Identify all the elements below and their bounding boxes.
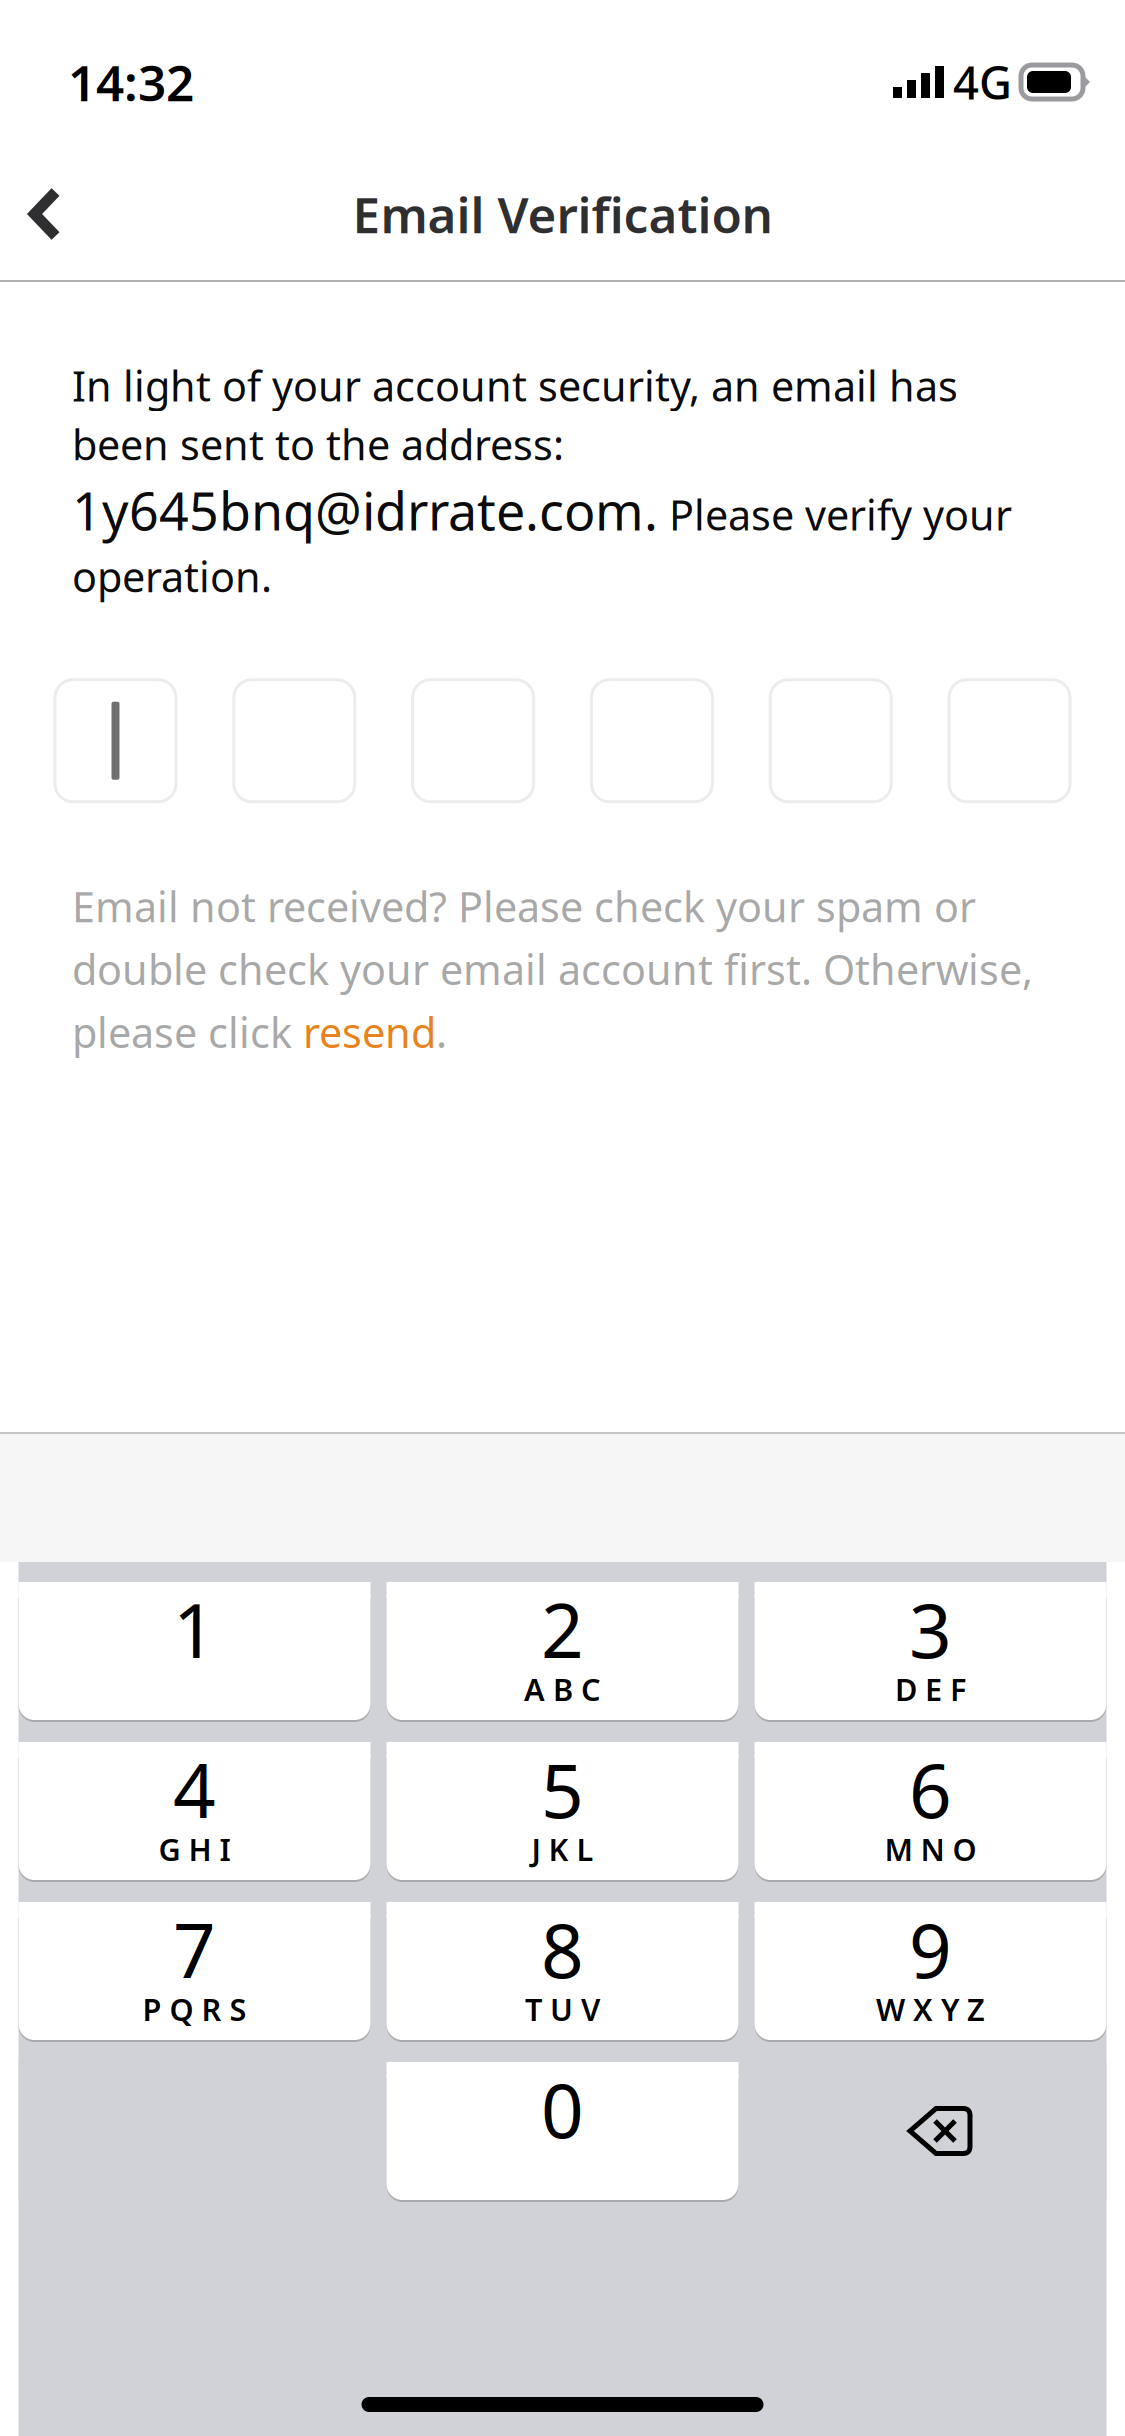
button[interactable]: Verification code digit 4 bbox=[591, 680, 712, 802]
button[interactable]: Delete bbox=[754, 2062, 1106, 2200]
button[interactable]: Verification code digit 1 bbox=[55, 680, 176, 802]
staticText: 5 bbox=[541, 1739, 584, 1839]
staticText: 3 bbox=[909, 1579, 952, 1679]
staticText: 0 bbox=[541, 2059, 584, 2159]
button[interactable]: 3 bbox=[754, 1582, 1106, 1720]
staticText: 14:32 bbox=[68, 49, 194, 115]
staticText: 9 bbox=[909, 1899, 952, 1999]
staticText: T U V bbox=[525, 1989, 600, 2029]
button[interactable]: 9 bbox=[754, 1902, 1106, 2040]
staticText: Email Verification bbox=[352, 181, 772, 247]
button[interactable]: Back bbox=[0, 164, 90, 264]
button[interactable]: 6 bbox=[754, 1742, 1106, 1880]
button[interactable]: Verification code digit 2 bbox=[234, 680, 355, 802]
button[interactable]: Verification code digit 5 bbox=[770, 680, 891, 802]
button[interactable]: Verification code digit 6 bbox=[949, 680, 1070, 802]
button[interactable]: 1 bbox=[18, 1582, 370, 1720]
staticText: J K L bbox=[531, 1829, 593, 1869]
button[interactable]: Verification code digit 3 bbox=[413, 680, 534, 802]
button[interactable]: 7 bbox=[18, 1902, 370, 2040]
staticText: In light of your account security, an em… bbox=[72, 358, 1012, 604]
button[interactable]: 5 bbox=[386, 1742, 738, 1880]
button[interactable]: 4 bbox=[18, 1742, 370, 1880]
staticText: M N O bbox=[884, 1829, 976, 1869]
staticText: 4 bbox=[173, 1739, 216, 1839]
button[interactable]: 2 bbox=[386, 1582, 738, 1720]
staticText: 2 bbox=[541, 1579, 584, 1679]
staticText: 7 bbox=[173, 1899, 216, 1999]
staticText: P Q R S bbox=[142, 1989, 246, 2029]
staticText: G H I bbox=[158, 1829, 230, 1869]
staticText: D E F bbox=[895, 1669, 966, 1709]
button[interactable]: 0 bbox=[386, 2062, 738, 2200]
button[interactable]: 8 bbox=[386, 1902, 738, 2040]
staticText: W X Y Z bbox=[876, 1989, 985, 2029]
staticText: 6 bbox=[909, 1739, 952, 1839]
staticText: 1 bbox=[173, 1579, 216, 1679]
staticText: 4G bbox=[953, 52, 1012, 112]
staticText: A B C bbox=[524, 1669, 601, 1709]
staticText: 8 bbox=[541, 1899, 584, 1999]
staticText: Email not received? Please check your sp… bbox=[72, 879, 1033, 1059]
